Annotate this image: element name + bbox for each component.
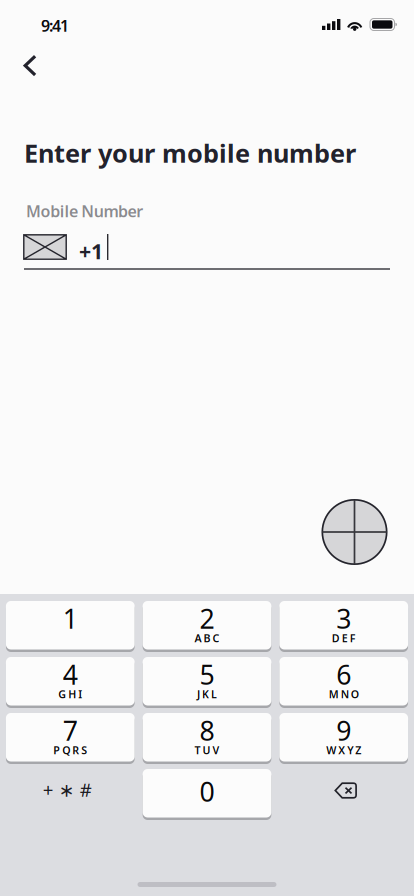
- button[interactable]: 2: [143, 601, 271, 652]
- staticText: 4: [63, 657, 78, 692]
- button[interactable]: Delete: [279, 769, 408, 820]
- button[interactable]: Back: [0, 43, 56, 87]
- staticText: 9: [336, 713, 351, 748]
- staticText: MNO: [329, 687, 359, 701]
- staticText: WXYZ: [326, 743, 361, 757]
- staticText: PQRS: [53, 743, 87, 757]
- staticText: JKL: [197, 687, 217, 701]
- staticText: 3: [336, 601, 351, 636]
- button[interactable]: 7: [6, 713, 135, 764]
- staticText: 0: [199, 774, 214, 809]
- staticText: Mobile Number: [26, 200, 143, 222]
- button[interactable]: 8: [143, 713, 271, 764]
- staticText: Enter your mobile number: [24, 136, 356, 170]
- button[interactable]: 4: [6, 657, 135, 708]
- button[interactable]: 9: [279, 713, 408, 764]
- staticText: + ∗ #: [43, 777, 92, 802]
- staticText: 9:41: [41, 15, 69, 36]
- staticText: +1: [79, 237, 103, 265]
- button[interactable]: + ∗ #: [6, 769, 135, 820]
- staticText: 8: [199, 713, 214, 748]
- button[interactable]: 3: [279, 601, 408, 652]
- button[interactable]: 1: [6, 601, 135, 652]
- staticText: ABC: [194, 631, 219, 645]
- staticText: TUV: [194, 743, 219, 757]
- staticText: 7: [63, 713, 78, 748]
- staticText: 5: [199, 657, 214, 692]
- button[interactable]: 0: [143, 769, 271, 820]
- staticText: DEF: [332, 631, 356, 645]
- staticText: GHI: [58, 687, 82, 701]
- staticText: 1: [63, 601, 78, 636]
- staticText: 2: [199, 601, 214, 636]
- button[interactable]: 6: [279, 657, 408, 708]
- button[interactable]: 5: [143, 657, 271, 708]
- staticText: 6: [336, 657, 351, 692]
